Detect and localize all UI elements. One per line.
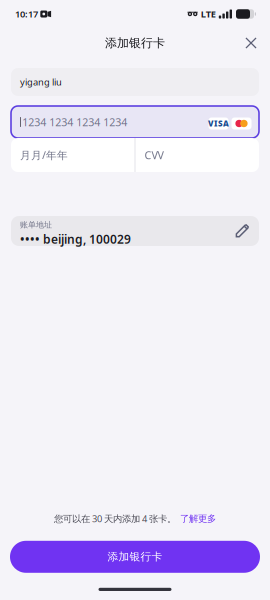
staticText: 1234 1234 1234 1234	[22, 115, 127, 129]
staticText: •••• beijing, 100029	[20, 231, 131, 247]
staticText: VISA	[208, 118, 229, 129]
staticText: 账单地址	[20, 220, 52, 230]
button[interactable]: 添加银行卡	[0, 541, 270, 573]
staticText: 月月/年年	[20, 148, 68, 162]
button[interactable]: yigang liu	[0, 68, 270, 96]
staticText: 了解更多	[180, 513, 216, 524]
staticText: CVV	[144, 148, 163, 162]
staticText: 10:17	[15, 8, 38, 20]
button[interactable]: 账单地址	[0, 216, 270, 246]
staticText: yigang liu	[20, 76, 62, 88]
staticText: LTE	[201, 8, 216, 20]
button[interactable]: 关闭	[238, 30, 264, 56]
staticText: 您可以在 30 天内添加 4 张卡。	[54, 512, 176, 525]
staticText: 添加银行卡	[107, 550, 162, 563]
button[interactable]: 了解更多	[180, 513, 216, 524]
staticText: 添加银行卡	[105, 36, 165, 50]
